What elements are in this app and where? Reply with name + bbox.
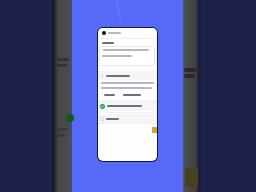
button[interactable]: [99, 46, 155, 66]
button[interactable]: [104, 94, 115, 96]
button[interactable]: [98, 71, 157, 80]
other: Completed: [100, 104, 105, 109]
button[interactable]: [98, 28, 157, 38]
button[interactable]: [123, 94, 141, 96]
button[interactable]: Completed: [98, 101, 157, 111]
button[interactable]: [98, 114, 157, 123]
